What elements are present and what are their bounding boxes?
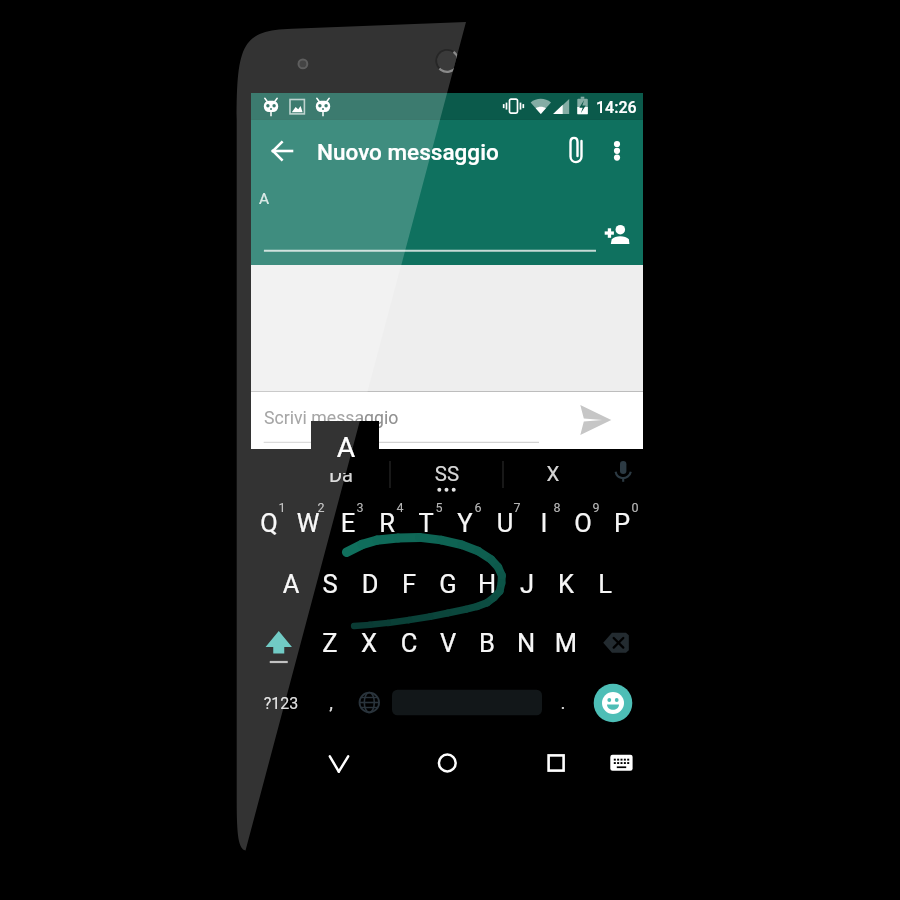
staticText: Z (210, 628, 450, 658)
staticText: I (424, 508, 664, 538)
staticText: A (171, 569, 411, 599)
staticText: M (446, 628, 686, 658)
button[interactable]: Voice input (607, 455, 639, 491)
staticText: J (407, 569, 647, 599)
button[interactable]: Switch keyboard (600, 740, 644, 784)
staticText: 6 (358, 500, 598, 515)
staticText: C (289, 628, 529, 658)
button[interactable]: Shift (262, 624, 296, 662)
staticText: H (367, 569, 607, 599)
staticText: 7 (397, 500, 637, 515)
staticText: 9 (476, 500, 716, 515)
staticText: 4 (280, 500, 520, 515)
staticText: 14:26 (596, 98, 637, 117)
staticText: L (485, 569, 725, 599)
staticText: D (250, 569, 490, 599)
staticText: X (433, 462, 673, 486)
button[interactable]: Recent apps (534, 740, 578, 784)
staticText: 1 (162, 500, 402, 515)
staticText: Scrivi messaggio (264, 408, 399, 429)
staticText: V (328, 628, 568, 658)
staticText: 5 (319, 500, 559, 515)
staticText: T (306, 508, 546, 538)
staticText: R (267, 508, 507, 538)
staticText: O (463, 508, 703, 538)
button[interactable]: Emoji (594, 684, 632, 722)
staticText: G (328, 569, 568, 599)
staticText: F (289, 569, 529, 599)
button[interactable]: Attach file (556, 128, 602, 174)
staticText: X (249, 628, 489, 658)
staticText: E (228, 508, 468, 538)
staticText: Da (221, 463, 461, 486)
staticText: 0 (515, 500, 755, 515)
staticText: 8 (437, 500, 677, 515)
staticText: Y (345, 508, 585, 538)
staticText: A (259, 190, 270, 208)
staticText: P (502, 508, 742, 538)
staticText: S (210, 569, 450, 599)
button[interactable]: Add recipient (596, 212, 640, 256)
staticText: K (446, 569, 686, 599)
staticText: N (406, 628, 646, 658)
staticText: Q (149, 508, 389, 538)
staticText: Nuovo messaggio (317, 139, 499, 165)
staticText: 3 (240, 500, 480, 515)
button[interactable]: Message input (258, 395, 568, 445)
button[interactable]: Back (260, 128, 306, 174)
button[interactable]: Backspace (601, 624, 635, 662)
button[interactable]: Home (425, 740, 469, 784)
button[interactable]: Send message (572, 397, 620, 443)
staticText: SS (327, 462, 567, 486)
staticText: 2 (201, 500, 441, 515)
staticText: B (367, 628, 607, 658)
button[interactable]: More options (596, 128, 640, 174)
staticText: U (385, 508, 625, 538)
staticText: A (226, 431, 466, 464)
staticText: W (188, 508, 428, 538)
staticText: , (211, 691, 451, 713)
staticText: . (443, 691, 683, 713)
button[interactable]: Back (317, 740, 361, 784)
staticText: ?123 (161, 694, 401, 713)
